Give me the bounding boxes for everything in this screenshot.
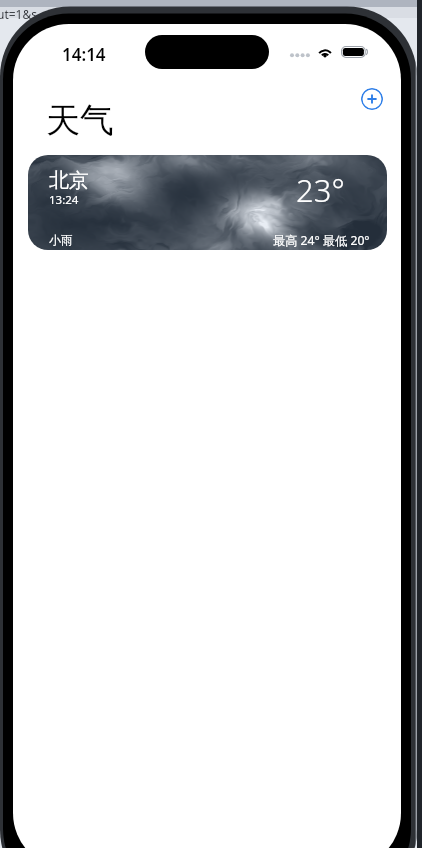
staticText: 14:14 [62, 43, 106, 66]
staticText: 最高 24° 最低 20° [273, 232, 370, 249]
staticText: 天气 [46, 99, 114, 142]
button[interactable]: 北京 [28, 155, 387, 250]
staticText: 北京 [49, 168, 89, 193]
staticText: 小雨 [49, 232, 73, 247]
staticText: ut=1&s [0, 6, 38, 22]
staticText: 23° [296, 169, 345, 211]
staticText: 13:24 [49, 192, 79, 208]
button[interactable]: Add city [361, 88, 383, 110]
